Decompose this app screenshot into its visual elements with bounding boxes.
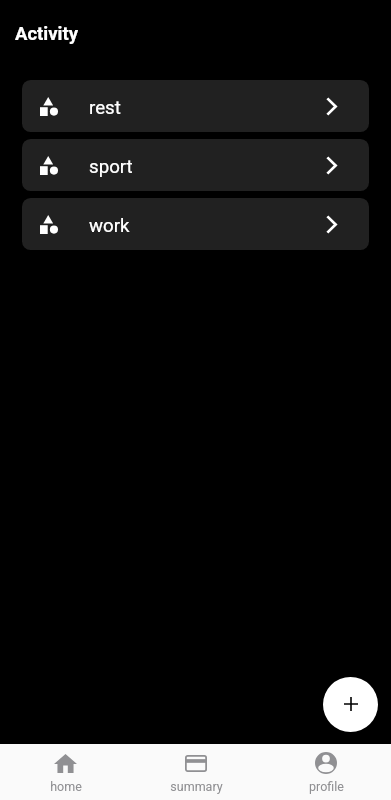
button[interactable]: sport: [22, 139, 369, 191]
staticText: work: [89, 215, 130, 237]
staticText: Activity: [15, 23, 79, 45]
button[interactable]: rest: [22, 80, 369, 132]
button[interactable]: work: [22, 198, 369, 250]
button[interactable]: summary: [131, 744, 261, 800]
button[interactable]: Add activity: [323, 677, 378, 732]
staticText: summary: [170, 779, 223, 794]
staticText: profile: [309, 779, 344, 794]
staticText: rest: [89, 97, 121, 119]
staticText: sport: [89, 156, 133, 178]
staticText: home: [50, 779, 82, 794]
button[interactable]: home: [0, 744, 131, 800]
button[interactable]: profile: [261, 744, 391, 800]
